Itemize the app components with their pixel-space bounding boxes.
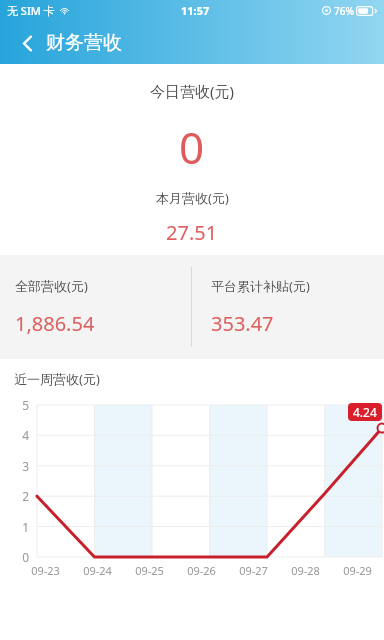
staticText: 09-26 [187, 563, 216, 578]
staticText: 0 [179, 117, 205, 177]
staticText: 1,886.54 [15, 310, 95, 337]
staticText: 09-24 [83, 563, 112, 578]
staticText: 5 [22, 397, 29, 413]
button[interactable]: Back [11, 27, 43, 59]
staticText: 4 [22, 427, 29, 443]
staticText: 09-27 [239, 563, 268, 578]
staticText: 09-28 [291, 563, 320, 578]
staticText: 0 [22, 549, 29, 565]
staticText: 本月营收(元) [156, 189, 229, 207]
staticText: 1 [22, 519, 29, 535]
staticText: 全部营收(元) [15, 277, 88, 295]
staticText: 353.47 [211, 310, 274, 337]
staticText: 今日营收(元) [150, 81, 235, 101]
staticText: 09-29 [343, 563, 372, 578]
button[interactable]: 全部营收(元) [0, 255, 384, 359]
staticText: 27.51 [166, 219, 218, 246]
staticText: 76% [334, 4, 354, 18]
staticText: 09-25 [135, 563, 164, 578]
staticText: 近一周营收(元) [14, 370, 100, 388]
staticText: 11:57 [181, 3, 210, 18]
staticText: 2 [22, 488, 29, 504]
staticText: 财务营收 [46, 31, 122, 55]
staticText: 3 [22, 458, 29, 474]
staticText: 09-23 [31, 563, 60, 578]
staticText: 平台累计补贴(元) [211, 277, 310, 295]
staticText: 无 SIM 卡 [7, 3, 55, 18]
staticText: 4.24 [353, 404, 377, 420]
